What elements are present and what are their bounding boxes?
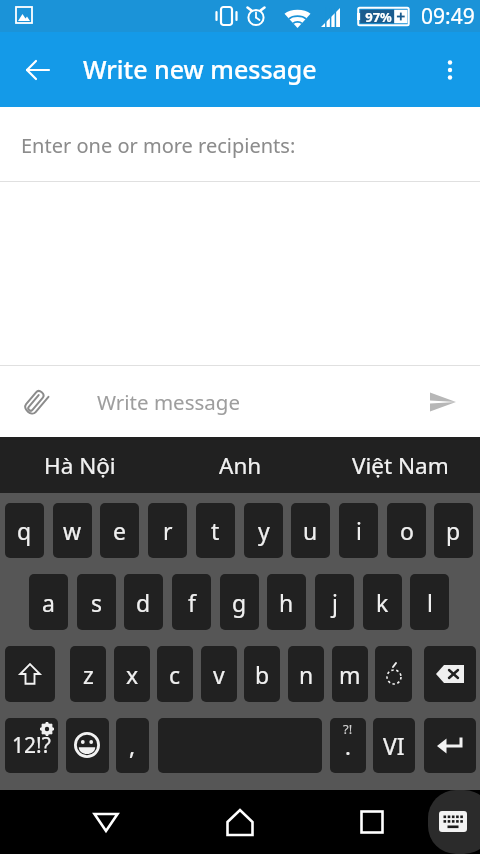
button[interactable]: h — [267, 574, 306, 630]
button[interactable]: b — [244, 646, 280, 702]
staticText: t — [211, 515, 220, 546]
staticText: k — [376, 587, 389, 618]
button[interactable]: Attach — [12, 378, 60, 426]
button[interactable]: 12!? — [5, 718, 58, 773]
button[interactable] — [375, 646, 412, 702]
button[interactable]: Hà Nội — [0, 437, 160, 493]
button[interactable]: y — [244, 503, 283, 558]
staticText: e — [113, 515, 126, 546]
button[interactable]: j — [315, 574, 354, 630]
staticText: r — [163, 515, 173, 546]
staticText: 97% — [362, 8, 395, 26]
staticText: q — [17, 515, 32, 546]
staticText: Hà Nội — [44, 450, 116, 481]
staticText: z — [83, 659, 94, 690]
staticText: o — [400, 515, 414, 546]
button[interactable] — [424, 718, 476, 773]
staticText: v — [213, 659, 225, 690]
button[interactable]: Home — [208, 790, 272, 854]
staticText: y — [258, 515, 270, 546]
staticText: p — [446, 515, 461, 546]
button[interactable]: r — [148, 503, 187, 558]
staticText: w — [63, 515, 82, 546]
staticText: . — [345, 731, 351, 761]
button[interactable]: l — [410, 574, 449, 630]
staticText: Việt Nam — [352, 450, 449, 481]
staticText: Anh — [219, 450, 262, 481]
staticText: x — [126, 659, 139, 690]
button[interactable]: Keyboard — [428, 790, 480, 854]
button[interactable]: More options — [426, 46, 474, 94]
staticText: l — [427, 587, 433, 618]
button[interactable]: Back — [74, 790, 138, 854]
button[interactable]: v — [201, 646, 237, 702]
staticText: n — [299, 659, 314, 690]
staticText: d — [136, 587, 151, 618]
staticText: Enter one or more recipients: — [21, 132, 296, 159]
button[interactable]: m — [332, 646, 368, 702]
staticText: b — [255, 659, 270, 690]
staticText: Write message — [97, 388, 240, 416]
button[interactable]: p — [434, 503, 473, 558]
staticText: , — [129, 730, 136, 761]
button[interactable]: g — [220, 574, 259, 630]
staticText: a — [42, 587, 55, 618]
staticText: h — [279, 587, 294, 618]
button[interactable]: q — [5, 503, 44, 558]
staticText: g — [232, 587, 247, 618]
staticText: j — [332, 587, 338, 618]
button[interactable]: o — [387, 503, 426, 558]
staticText: m — [339, 659, 361, 690]
button[interactable] — [66, 718, 109, 773]
staticText: 09:49 — [421, 2, 475, 31]
button[interactable]: z — [70, 646, 106, 702]
button[interactable]: Back — [14, 46, 62, 94]
staticText: 12!? — [12, 731, 51, 760]
button[interactable]: Recents — [340, 790, 404, 854]
button[interactable] — [424, 646, 476, 702]
button[interactable]: Việt Nam — [320, 437, 480, 493]
button[interactable]: VI — [373, 718, 415, 773]
staticText: c — [169, 659, 181, 690]
button[interactable]: x — [114, 646, 150, 702]
staticText: VI — [383, 730, 405, 761]
staticText: u — [303, 515, 318, 546]
button[interactable]: s — [77, 574, 116, 630]
button[interactable]: c — [157, 646, 193, 702]
button[interactable]: . — [330, 718, 366, 773]
button[interactable]: u — [291, 503, 330, 558]
button[interactable]: d — [124, 574, 163, 630]
button[interactable]: a — [29, 574, 68, 630]
staticText: s — [91, 587, 103, 618]
button[interactable]: Enter one or more recipients: — [0, 107, 480, 181]
button[interactable] — [5, 646, 55, 702]
button[interactable]: n — [288, 646, 324, 702]
button[interactable]: t — [196, 503, 235, 558]
staticText: ?! — [343, 720, 353, 738]
staticText: i — [356, 515, 362, 546]
button[interactable]: , — [116, 718, 149, 773]
button[interactable]: Anh — [160, 437, 320, 493]
button[interactable]: Send — [418, 378, 466, 426]
staticText: Write new message — [83, 52, 317, 86]
button[interactable]: e — [100, 503, 139, 558]
staticText: f — [188, 587, 196, 618]
button[interactable]: w — [53, 503, 92, 558]
button[interactable]: f — [172, 574, 211, 630]
button[interactable]: k — [363, 574, 402, 630]
button[interactable]: i — [339, 503, 378, 558]
